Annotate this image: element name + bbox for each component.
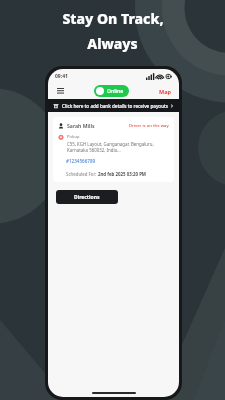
button[interactable]: Click here to add bank details to receiv… [48,99,179,112]
button[interactable]: Directions [56,190,118,204]
button[interactable]: #1234566789 [66,158,96,164]
staticText: Pickup [67,134,80,139]
staticText: Always [87,34,138,53]
staticText: Sarah Mills [67,122,95,129]
staticText: Stay On Track, [62,9,164,28]
staticText: Click here to add bank details to receiv… [62,103,169,109]
staticText: C55, KGH Layout, Ganganagar, Bengaluru, … [67,141,154,153]
staticText: Map [159,88,171,95]
button[interactable]: Sarah Mills [53,117,174,182]
staticText: Online [107,88,124,95]
staticText: Driver is on the way [129,123,169,129]
button[interactable]: Open menu [54,85,66,97]
staticText: 2nd feb 2025 03:20 PM [98,171,146,177]
staticText: Scheduled For: [66,171,98,177]
button[interactable]: Map [157,86,173,97]
staticText: 09:41 [55,73,68,80]
button[interactable]: Online [94,85,129,97]
staticText: Directions [74,194,100,201]
